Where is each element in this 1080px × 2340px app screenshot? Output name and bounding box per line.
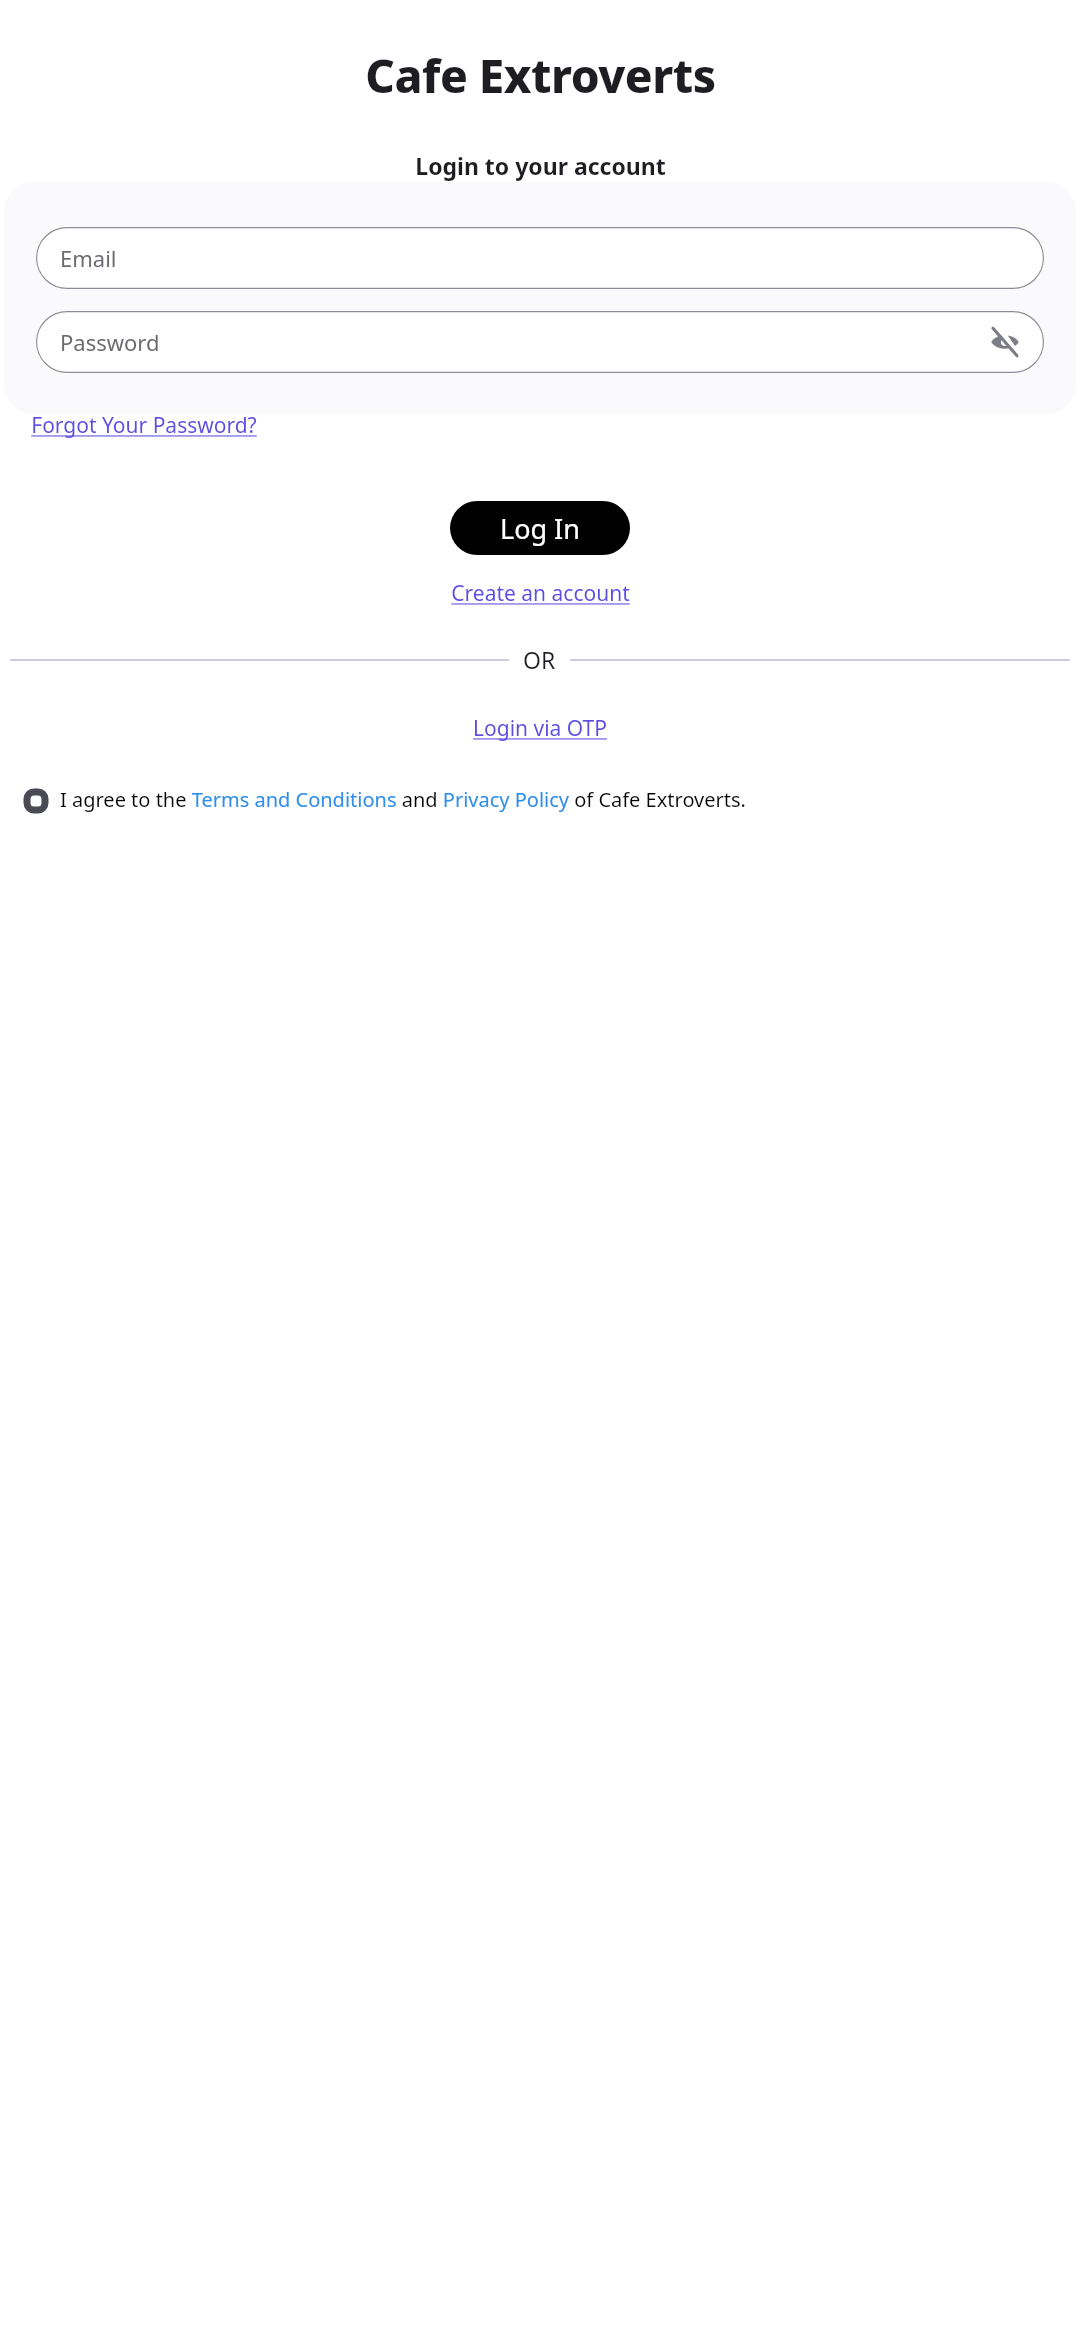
staticText: Login to your account — [415, 150, 666, 181]
staticText: Email — [60, 243, 117, 273]
staticText: Create an account — [451, 579, 630, 608]
staticText: Login via OTP — [473, 714, 607, 743]
staticText: Password — [60, 327, 160, 357]
staticText: I agree to the Terms and Conditions and … — [60, 786, 746, 813]
button[interactable]: Password — [36, 311, 1044, 373]
staticText: Log In — [500, 510, 580, 547]
button[interactable]: Log In — [450, 501, 630, 555]
button[interactable]: Login via OTP — [473, 714, 607, 743]
button[interactable]: Email — [36, 227, 1044, 289]
button[interactable]: Create an account — [451, 579, 630, 608]
button[interactable]: I agree to the Terms and Conditions and … — [27, 786, 1068, 813]
staticText: Cafe Extroverts — [365, 44, 716, 107]
button[interactable]: Show password — [982, 319, 1028, 365]
staticText: Forgot Your Password? — [31, 411, 257, 440]
staticText: OR — [523, 644, 556, 675]
button[interactable]: Forgot Your Password? — [31, 411, 257, 440]
